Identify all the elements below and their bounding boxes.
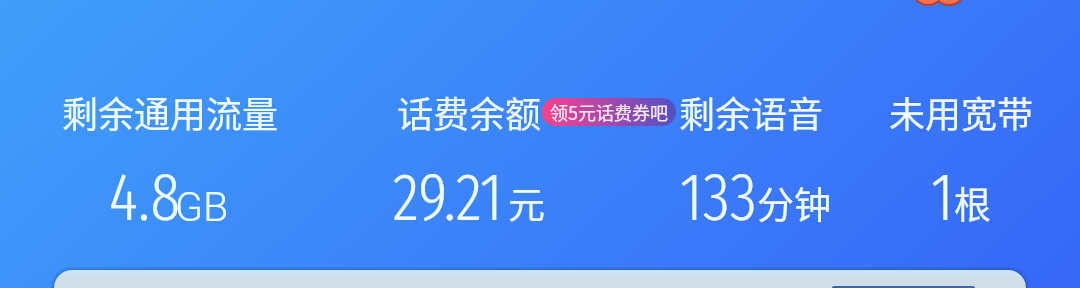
staticText: 剩余通用流量 — [62, 86, 279, 138]
staticText: 4.8 — [109, 157, 181, 237]
button[interactable] — [832, 286, 975, 288]
staticText: 领5元话费券吧 — [550, 99, 668, 125]
staticText: GB — [175, 183, 229, 231]
staticText: 话费余额 — [397, 86, 542, 138]
button[interactable]: 领5元话费券吧 — [542, 98, 676, 126]
staticText: 根 — [954, 176, 991, 230]
staticText: 元 — [508, 176, 545, 230]
staticText: 1 — [931, 157, 954, 237]
staticText: 分钟 — [757, 176, 831, 230]
staticText: 未用宽带 — [889, 86, 1034, 138]
staticText: 剩余语音 — [679, 86, 824, 138]
staticText: 29.21 — [393, 157, 503, 237]
button[interactable] — [54, 270, 1026, 288]
staticText: 133 — [680, 157, 757, 237]
